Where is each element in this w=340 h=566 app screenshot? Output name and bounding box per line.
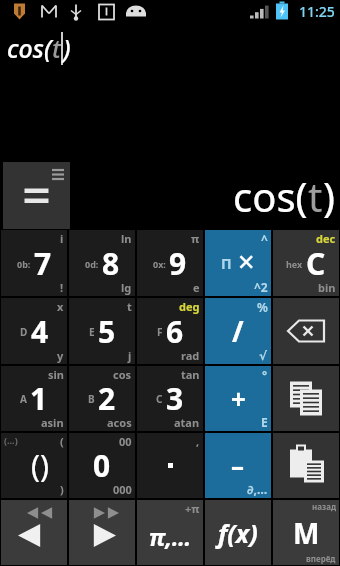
staticText: E: [261, 414, 268, 430]
staticText: 9: [169, 243, 187, 284]
staticText: –: [231, 448, 245, 483]
button[interactable]: Equals: [3, 162, 70, 229]
staticText: M: [293, 514, 320, 552]
button[interactable]: 5: [69, 298, 135, 364]
staticText: /: [232, 312, 244, 350]
staticText: y: [57, 348, 64, 363]
staticText: acos: [107, 415, 132, 430]
staticText: назад: [312, 501, 336, 512]
button[interactable]: Parentheses: [1, 433, 67, 498]
staticText: A: [20, 392, 27, 406]
staticText: 8: [102, 243, 120, 284]
staticText: i: [60, 231, 64, 246]
staticText: bin: [318, 280, 336, 295]
staticText: ^: [261, 231, 268, 247]
staticText: ^2: [254, 279, 268, 295]
staticText: cos(: [233, 169, 308, 223]
staticText: °: [262, 367, 268, 383]
staticText: 000: [113, 482, 132, 497]
staticText: e: [193, 280, 200, 295]
button[interactable]: Memory: [273, 500, 339, 565]
staticText: sin: [48, 367, 64, 382]
staticText: 6: [166, 311, 184, 352]
button[interactable]: Minus: [205, 433, 271, 498]
staticText: 0x:: [153, 258, 166, 270]
staticText: x: [57, 299, 64, 314]
staticText: t: [52, 31, 61, 65]
button[interactable]: 6: [137, 298, 203, 364]
staticText: cos: [113, 367, 132, 382]
staticText: dec: [316, 231, 336, 246]
button[interactable]: Constants: [137, 500, 203, 565]
staticText: 2: [98, 378, 116, 419]
staticText: cos(: [7, 31, 52, 65]
button[interactable]: Clear: [273, 230, 339, 296]
staticText: ln: [121, 231, 132, 246]
staticText: (): [31, 445, 49, 486]
button[interactable]: 9: [137, 230, 203, 296]
staticText: Π: [221, 254, 232, 273]
staticText: j: [128, 348, 132, 363]
staticText: atan: [174, 415, 200, 430]
staticText: t: [308, 169, 323, 223]
staticText: (...): [4, 434, 18, 446]
button[interactable]: Divide: [205, 298, 271, 364]
staticText: вперёд: [306, 553, 336, 564]
button[interactable]: Plus: [205, 366, 271, 431]
button[interactable]: Move right: [69, 500, 135, 565]
staticText: ,: [196, 434, 200, 449]
staticText: π,…: [149, 521, 192, 552]
staticText: 4: [31, 311, 49, 352]
button[interactable]: 4: [1, 298, 67, 364]
button[interactable]: Multiply: [205, 230, 271, 296]
staticText: D: [20, 325, 28, 339]
staticText: +: [231, 381, 246, 416]
button[interactable]: Backspace: [273, 298, 339, 364]
staticText: lg: [121, 280, 132, 295]
button[interactable]: Decimal point: [137, 433, 203, 498]
staticText: asin: [41, 415, 64, 430]
staticText: hex: [286, 258, 303, 270]
staticText: ∂,…: [247, 481, 268, 497]
button[interactable]: 3: [137, 366, 203, 431]
staticText: rad: [181, 348, 200, 363]
staticText: ): [63, 31, 71, 65]
button[interactable]: Functions: [205, 500, 271, 565]
button[interactable]: Paste: [273, 433, 339, 498]
button[interactable]: Copy: [273, 366, 339, 431]
staticText: f(x): [218, 516, 258, 550]
staticText: 5: [98, 311, 116, 352]
staticText: (: [60, 434, 64, 449]
button[interactable]: Move left: [1, 500, 67, 565]
staticText: B: [88, 392, 95, 406]
staticText: C: [306, 243, 326, 284]
staticText: 11:25: [299, 2, 335, 21]
staticText: 7: [34, 243, 52, 284]
staticText: ): [60, 482, 64, 497]
staticText: ): [323, 169, 335, 223]
staticText: deg: [179, 299, 200, 314]
staticText: 00: [119, 434, 132, 449]
staticText: ✕: [237, 250, 256, 276]
staticText: 0d:: [85, 258, 99, 270]
staticText: √: [259, 349, 268, 363]
staticText: !: [60, 280, 64, 295]
button[interactable]: 0: [69, 433, 135, 498]
staticText: +π: [185, 501, 200, 516]
staticText: C: [156, 392, 163, 406]
staticText: 0: [93, 445, 111, 486]
staticText: tan: [181, 367, 200, 382]
staticText: 1: [30, 378, 48, 419]
staticText: %: [257, 299, 268, 315]
staticText: F: [157, 325, 163, 339]
staticText: π: [191, 231, 200, 246]
button[interactable]: 7: [1, 230, 67, 296]
staticText: E: [89, 325, 95, 339]
staticText: 3: [166, 378, 184, 419]
staticText: 0b:: [17, 258, 31, 270]
button[interactable]: 2: [69, 366, 135, 431]
button[interactable]: 8: [69, 230, 135, 296]
button[interactable]: 1: [1, 366, 67, 431]
staticText: t: [127, 299, 132, 314]
